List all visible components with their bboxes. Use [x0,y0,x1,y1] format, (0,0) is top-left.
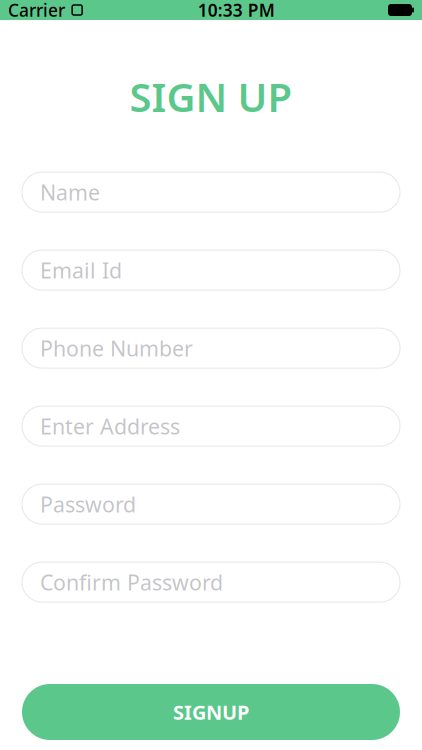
staticText: SIGNUP [173,699,249,725]
staticText: Password [40,490,136,518]
staticText: Email Id [40,256,122,284]
staticText: 10:33 PM [198,0,275,21]
staticText: Carrier [8,0,65,21]
button[interactable]: SIGNUP [22,684,400,740]
staticText: Phone Number [40,334,193,362]
staticText [65,0,70,21]
staticText: Enter Address [40,412,180,440]
staticText: SIGN UP [129,70,292,123]
staticText: Name [40,178,100,206]
staticText: Confirm Password [40,568,223,596]
